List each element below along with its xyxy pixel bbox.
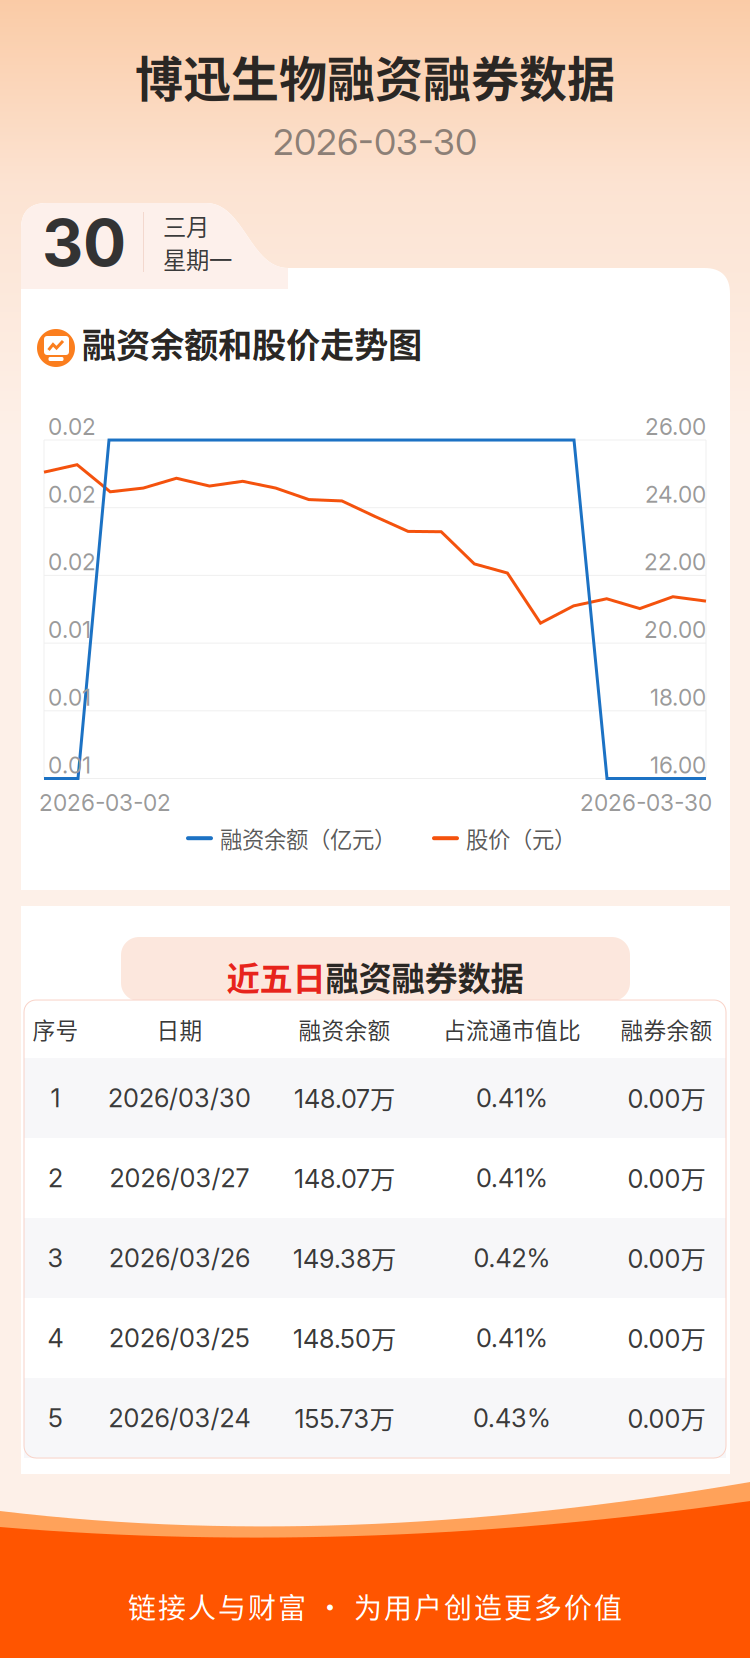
staticText: 0.00万 — [627, 1320, 705, 1356]
staticText: 占流通市值比 — [443, 1013, 581, 1045]
staticText: 0.02 — [48, 481, 96, 508]
staticText: 2026/03/30 — [108, 1083, 251, 1113]
staticText: 融资融券数据 — [325, 952, 523, 1000]
staticText: 16.00 — [650, 751, 706, 779]
staticText: 2026-03-30 — [580, 789, 712, 816]
staticText: 22.00 — [644, 548, 706, 576]
staticText: 5 — [48, 1403, 63, 1433]
staticText: 星期一 — [163, 242, 232, 276]
staticText: 2026/03/26 — [109, 1243, 250, 1273]
staticText: 24.00 — [645, 481, 706, 508]
staticText: 2026-03-30 — [273, 120, 477, 164]
staticText: 4 — [47, 1323, 63, 1353]
staticText: 0.02 — [48, 548, 96, 576]
staticText: 148.07万 — [294, 1160, 395, 1196]
staticText: 149.38万 — [293, 1240, 396, 1276]
staticText: 30 — [42, 204, 126, 281]
staticText: 20.00 — [644, 616, 706, 643]
staticText: 0.42% — [473, 1243, 550, 1273]
staticText: 2 — [48, 1163, 63, 1193]
staticText: 融资余额 — [298, 1013, 390, 1045]
staticText: 26.00 — [645, 413, 706, 440]
staticText: 0.41% — [476, 1323, 548, 1353]
staticText: 3 — [47, 1243, 63, 1273]
staticText: 日期 — [156, 1013, 202, 1045]
staticText: 0.00万 — [627, 1080, 705, 1116]
staticText: 0.41% — [476, 1163, 548, 1193]
staticText: 2026/03/25 — [109, 1323, 250, 1353]
staticText: 0.00万 — [627, 1400, 705, 1436]
staticText: 0.00万 — [627, 1160, 705, 1196]
staticText: 2026/03/27 — [109, 1163, 249, 1193]
staticText: 融资余额（亿元） — [220, 822, 396, 854]
staticText: 0.02 — [48, 413, 96, 440]
staticText: 链接人与财富 · 为用户创造更多价值 — [128, 1586, 622, 1626]
staticText: 近五日 — [226, 952, 325, 1000]
staticText: 0.43% — [473, 1403, 551, 1433]
staticText: 0.01 — [48, 684, 91, 711]
staticText: 1 — [50, 1083, 60, 1113]
staticText: 股价（元） — [466, 822, 576, 854]
staticText: 0.00万 — [627, 1240, 705, 1276]
staticText: 148.07万 — [294, 1080, 395, 1116]
staticText: 148.50万 — [293, 1320, 396, 1356]
staticText: 18.00 — [650, 684, 706, 711]
staticText: 0.41% — [476, 1083, 548, 1113]
staticText: 2026-03-02 — [39, 789, 171, 816]
staticText: 0.01 — [48, 616, 91, 643]
staticText: 0.01 — [48, 751, 91, 779]
staticText: 融资余额和股价走势图 — [82, 318, 422, 368]
staticText: 155.73万 — [294, 1400, 394, 1436]
staticText: 三月 — [163, 209, 209, 243]
staticText: 2026/03/24 — [108, 1403, 250, 1433]
staticText: 序号 — [32, 1013, 78, 1045]
staticText: 融券余额 — [620, 1013, 712, 1045]
staticText: 博迅生物融资融券数据 — [135, 41, 615, 110]
